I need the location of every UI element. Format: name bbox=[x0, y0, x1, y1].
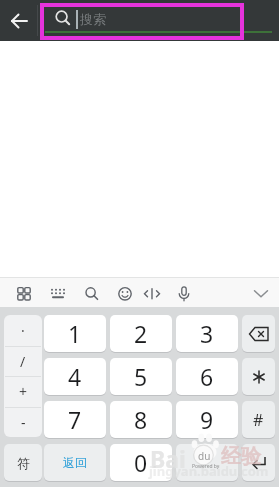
staticText: 返回 bbox=[63, 455, 87, 470]
staticText: + bbox=[19, 382, 28, 401]
button[interactable]: - bbox=[4, 407, 42, 437]
button[interactable] bbox=[171, 280, 197, 305]
staticText: 4 bbox=[68, 361, 82, 392]
button[interactable]: 7 bbox=[44, 401, 106, 438]
button[interactable]: 1 bbox=[44, 315, 106, 352]
button[interactable] bbox=[242, 315, 275, 352]
button[interactable]: 搜索 bbox=[37, 0, 272, 41]
staticText: / bbox=[20, 352, 26, 371]
button[interactable]: 8 bbox=[110, 401, 172, 438]
button[interactable]: 3 bbox=[176, 315, 238, 352]
staticText: du bbox=[198, 449, 211, 463]
button[interactable] bbox=[11, 280, 37, 305]
button[interactable]: # bbox=[242, 401, 275, 438]
staticText: # bbox=[253, 409, 264, 431]
button[interactable] bbox=[79, 280, 105, 305]
button[interactable] bbox=[6, 8, 32, 34]
staticText: 搜索 bbox=[80, 11, 106, 27]
button[interactable]: 6 bbox=[176, 358, 238, 395]
button[interactable]: + bbox=[4, 376, 42, 407]
staticText: 6 bbox=[200, 361, 214, 392]
button[interactable]: 返回 bbox=[44, 444, 106, 481]
button[interactable]: 符 bbox=[4, 444, 42, 481]
button[interactable] bbox=[242, 444, 275, 481]
staticText: 经验 bbox=[221, 444, 261, 469]
staticText: 2 bbox=[134, 318, 148, 349]
staticText: 7 bbox=[68, 404, 82, 435]
button[interactable] bbox=[112, 280, 138, 305]
staticText: - bbox=[21, 413, 26, 432]
button[interactable]: 0 bbox=[110, 444, 172, 481]
button[interactable]: / bbox=[4, 346, 42, 377]
button[interactable]: 2 bbox=[110, 315, 172, 352]
staticText: 0 bbox=[134, 447, 148, 478]
button[interactable]: 5 bbox=[110, 358, 172, 395]
staticText: 5 bbox=[134, 361, 148, 392]
staticText: 3 bbox=[200, 318, 214, 349]
staticText: 8 bbox=[134, 404, 148, 435]
button[interactable] bbox=[242, 358, 275, 395]
staticText: Bai bbox=[150, 443, 186, 474]
button[interactable] bbox=[139, 280, 165, 305]
button[interactable]: · bbox=[4, 315, 42, 346]
staticText: · bbox=[21, 321, 25, 340]
button[interactable] bbox=[45, 280, 71, 305]
button[interactable]: 4 bbox=[44, 358, 106, 395]
staticText: 1 bbox=[68, 318, 82, 349]
button[interactable] bbox=[176, 444, 238, 481]
button[interactable] bbox=[248, 280, 274, 305]
staticText: 符 bbox=[17, 455, 30, 471]
button[interactable]: 9 bbox=[176, 401, 238, 438]
staticText: 9 bbox=[200, 404, 214, 435]
staticText: Powered by bbox=[192, 463, 220, 470]
staticText: jingyan.baidu.com bbox=[149, 462, 269, 480]
